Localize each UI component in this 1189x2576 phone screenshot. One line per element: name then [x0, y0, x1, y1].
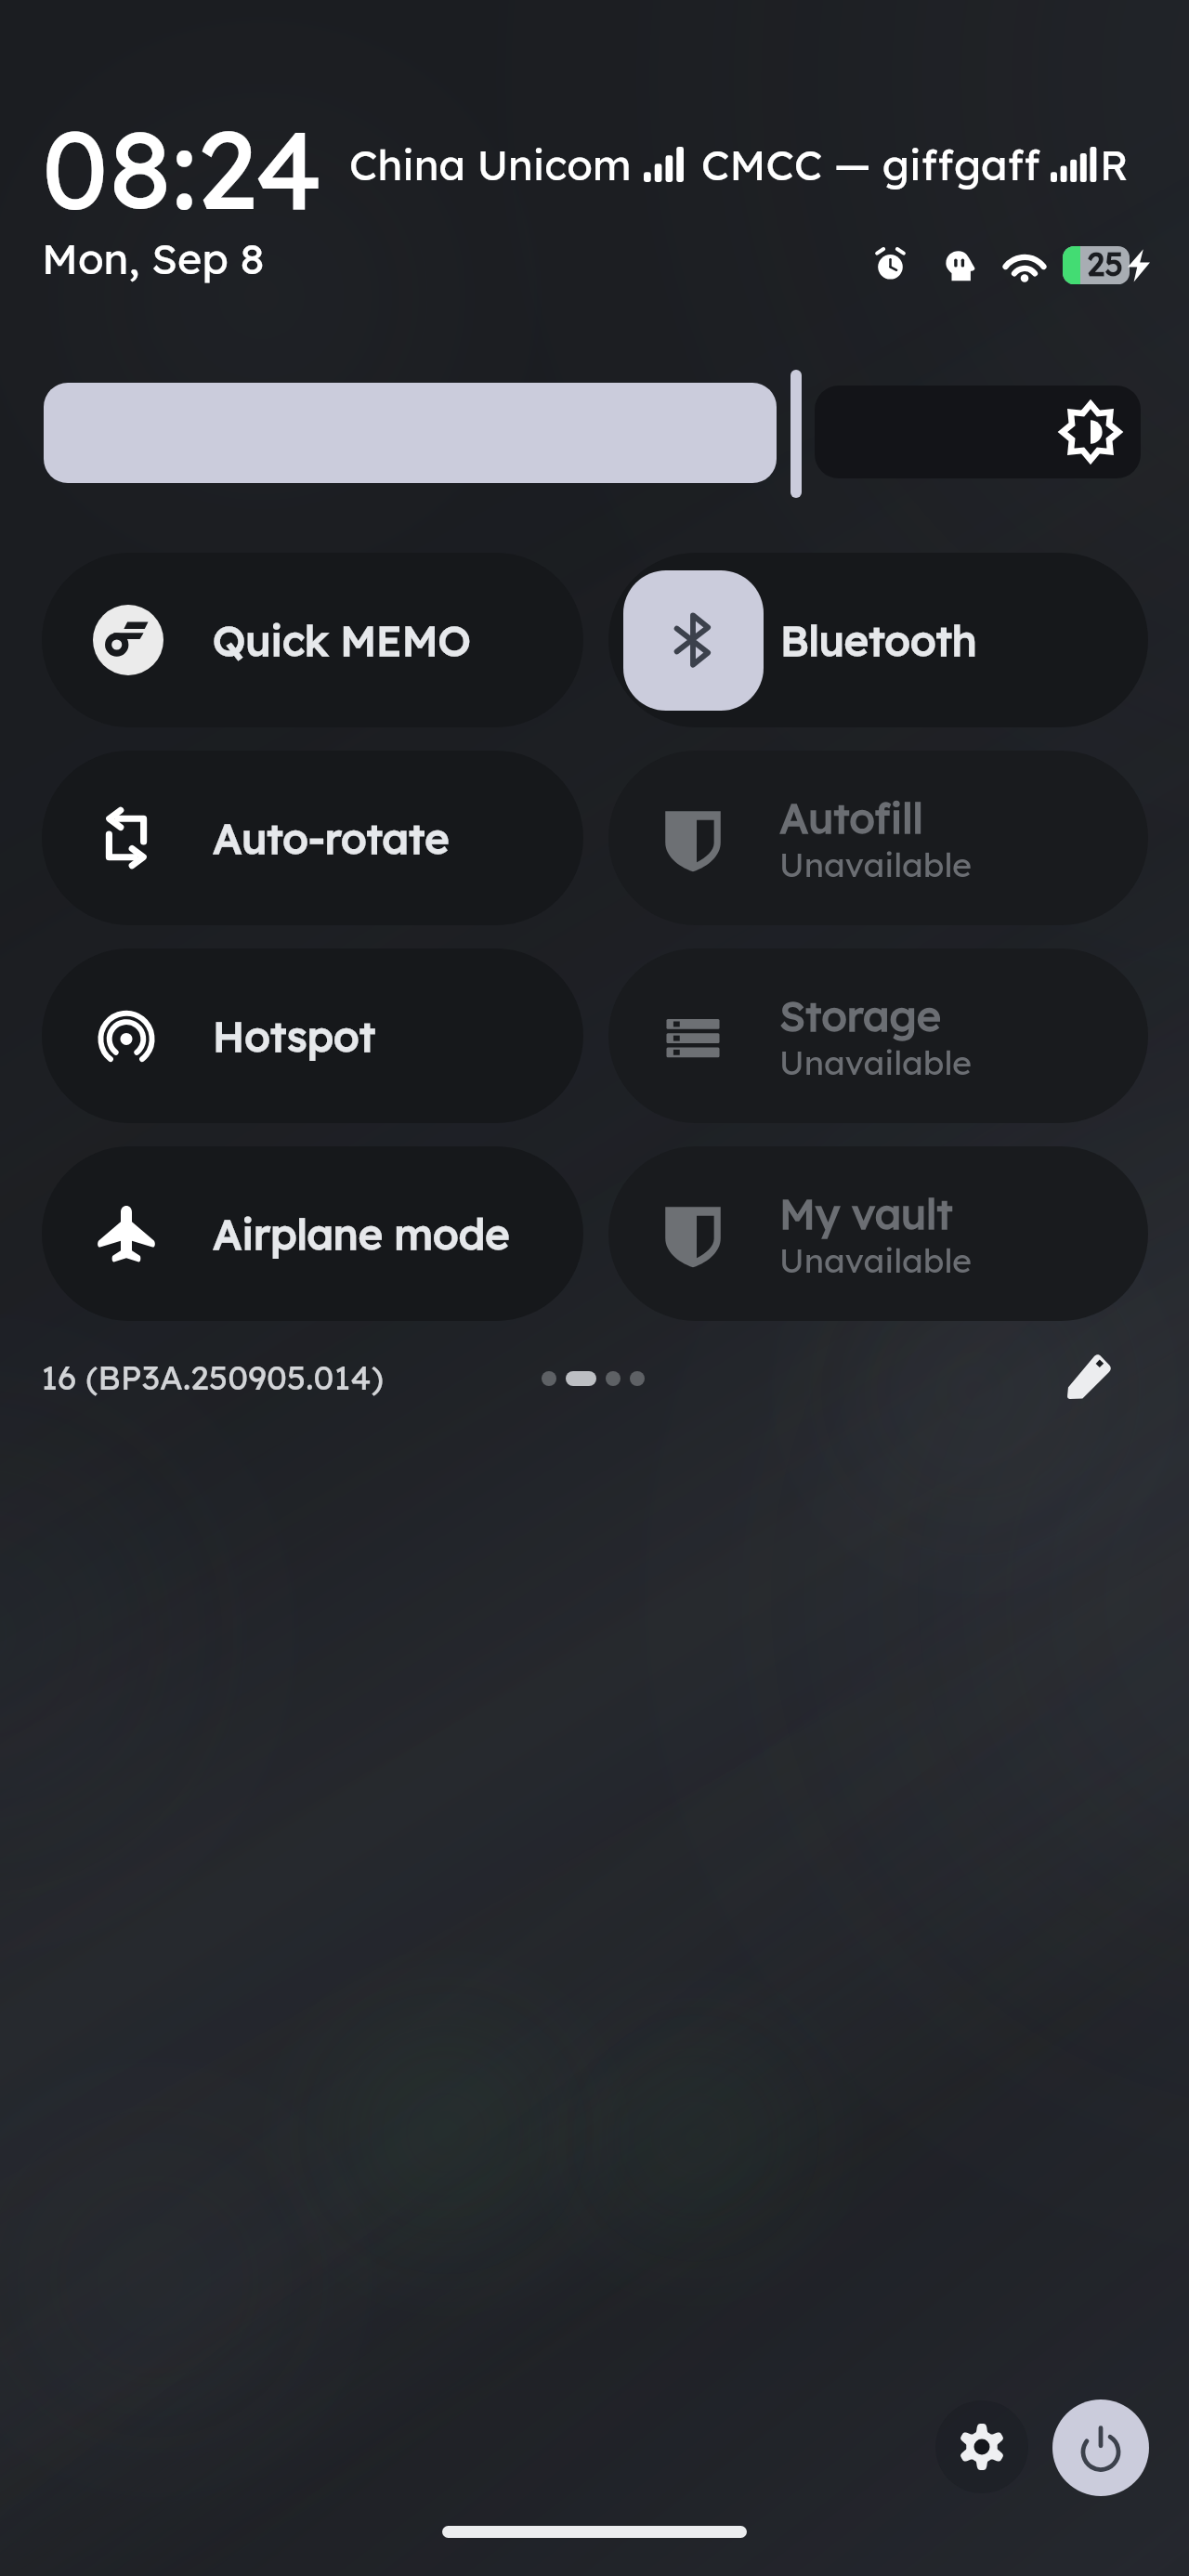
staticText: Unavailable: [779, 843, 973, 885]
button[interactable]: My vault: [608, 1146, 1148, 1321]
button[interactable]: Power: [1052, 2399, 1149, 2496]
staticText: Hotspot: [213, 1010, 376, 1062]
button[interactable]: Auto-rotate: [42, 751, 583, 925]
staticText: Mon, Sep 8: [42, 232, 265, 284]
button[interactable]: Storage: [608, 948, 1148, 1123]
staticText: Quick MEMO: [213, 614, 471, 666]
staticText: Bluetooth: [780, 614, 977, 666]
staticText: 08:24: [42, 99, 323, 237]
staticText: Autofill: [779, 791, 923, 843]
button[interactable]: Quick MEMO: [42, 553, 583, 727]
staticText: Unavailable: [779, 1239, 973, 1281]
button[interactable]: Hotspot: [42, 948, 583, 1123]
staticText: China Unicom: [349, 138, 632, 190]
staticText: Airplane mode: [213, 1208, 510, 1260]
staticText: CMCC — giffgaff: [701, 138, 1040, 190]
staticText: 25: [1087, 243, 1124, 284]
staticText: Unavailable: [779, 1041, 973, 1083]
button[interactable]: Bluetooth: [608, 553, 1148, 727]
button[interactable]: Brightness: [44, 383, 777, 483]
staticText: Auto-rotate: [213, 812, 450, 864]
button[interactable]: Airplane mode: [42, 1146, 583, 1321]
button[interactable]: Auto brightness: [815, 386, 1141, 478]
staticText: Storage: [779, 989, 942, 1041]
button[interactable]: Settings: [935, 2400, 1028, 2493]
button[interactable]: Edit tiles: [1039, 1327, 1139, 1427]
staticText: 16 (BP3A.250905.014): [41, 1356, 384, 1398]
button[interactable]: Autofill: [608, 751, 1148, 925]
staticText: R: [1100, 139, 1129, 190]
staticText: My vault: [779, 1187, 953, 1239]
